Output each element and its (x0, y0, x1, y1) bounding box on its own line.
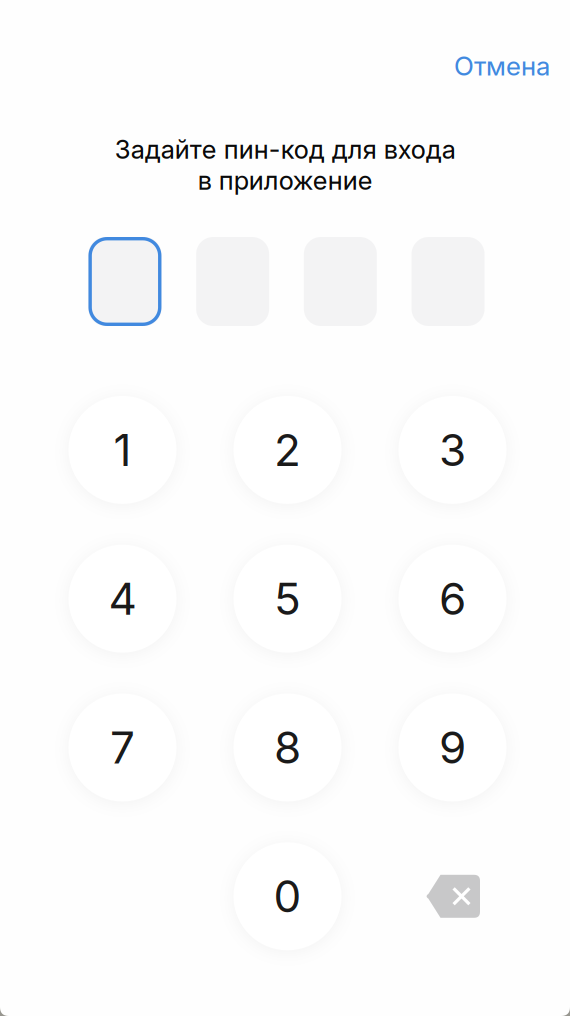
button[interactable]: 1 (40, 375, 205, 524)
button[interactable]: 2 (205, 375, 370, 524)
staticText: 3 (439, 423, 466, 476)
staticText: Отмена (454, 50, 550, 82)
button[interactable]: 0 (205, 822, 370, 971)
staticText: 2 (274, 423, 301, 476)
button[interactable]: 6 (370, 524, 535, 673)
button[interactable]: Отмена (428, 42, 570, 90)
staticText: 9 (439, 721, 466, 774)
button[interactable]: 4 (40, 524, 205, 673)
button[interactable]: Удалить (370, 822, 535, 971)
staticText: 8 (274, 721, 301, 774)
button[interactable]: 5 (205, 524, 370, 673)
staticText: 1 (113, 423, 131, 476)
button[interactable]: 9 (370, 673, 535, 822)
button[interactable]: 3 (370, 375, 535, 524)
button[interactable]: 7 (40, 673, 205, 822)
button[interactable]: 8 (205, 673, 370, 822)
staticText: 6 (439, 572, 466, 625)
staticText: 7 (110, 721, 135, 774)
staticText: 4 (108, 572, 136, 625)
staticText: 5 (274, 572, 301, 625)
staticText: 0 (273, 870, 301, 923)
staticText: Задайте пин-код для входа в приложение (114, 134, 455, 196)
